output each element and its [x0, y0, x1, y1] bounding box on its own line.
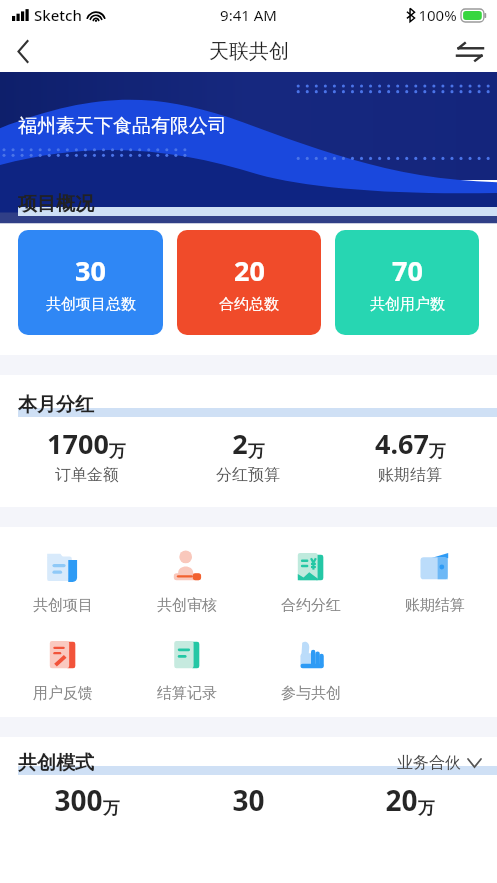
button[interactable]: 参与共创: [249, 627, 373, 709]
staticText: 万: [248, 441, 265, 462]
button[interactable]: 1700: [6, 425, 167, 485]
button[interactable]: 账期结算: [373, 539, 497, 621]
staticText: 订单金额: [55, 465, 119, 485]
button[interactable]: 合约分红: [249, 539, 373, 621]
button[interactable]: 30: [167, 781, 329, 819]
staticText: 用户反馈: [33, 684, 93, 703]
staticText: 2: [232, 425, 248, 462]
staticText: Sketch: [34, 5, 82, 25]
button[interactable]: 70: [335, 230, 479, 335]
staticText: 共创模式: [18, 751, 94, 775]
staticText: 合约总数: [219, 295, 279, 314]
staticText: 共创项目总数: [46, 295, 136, 314]
staticText: 业务合伙: [397, 753, 461, 773]
button[interactable]: 共创审核: [125, 539, 249, 621]
button[interactable]: 20: [329, 781, 491, 819]
button[interactable]: 300: [6, 781, 167, 819]
staticText: 70: [392, 252, 423, 289]
staticText: 300: [54, 781, 103, 819]
button[interactable]: 4.67: [329, 425, 491, 485]
staticText: 1700: [47, 425, 109, 462]
button[interactable]: 共创项目: [0, 539, 125, 621]
staticText: 福州素天下食品有限公司: [18, 114, 227, 138]
button[interactable]: 结算记录: [125, 627, 249, 709]
staticText: 100%: [418, 5, 457, 25]
staticText: 结算记录: [157, 684, 217, 703]
staticText: 万: [418, 798, 435, 819]
staticText: 分红预算: [216, 465, 280, 485]
staticText: 30: [75, 252, 106, 289]
staticText: 20: [234, 252, 265, 289]
staticText: 共创用户数: [370, 295, 445, 314]
button[interactable]: 用户反馈: [0, 627, 125, 709]
staticText: 共创项目: [33, 596, 93, 615]
button[interactable]: 20: [177, 230, 321, 335]
staticText: 4.67: [375, 425, 429, 462]
button[interactable]: Back: [0, 30, 46, 72]
staticText: 项目概况: [18, 192, 94, 216]
button[interactable]: 业务合伙: [397, 753, 481, 773]
button[interactable]: 2: [167, 425, 329, 485]
staticText: 30: [232, 781, 265, 819]
button[interactable]: Switch: [443, 30, 497, 72]
staticText: 9:41 AM: [220, 5, 277, 25]
staticText: 合约分红: [281, 596, 341, 615]
staticText: 万: [103, 798, 120, 819]
staticText: 20: [385, 781, 418, 819]
staticText: 天联共创: [209, 39, 289, 64]
staticText: 账期结算: [405, 596, 465, 615]
staticText: 万: [109, 441, 126, 462]
staticText: 万: [429, 441, 446, 462]
staticText: 本月分红: [18, 393, 94, 417]
staticText: 账期结算: [378, 465, 442, 485]
staticText: 共创审核: [157, 596, 217, 615]
staticText: 参与共创: [281, 684, 341, 703]
button[interactable]: 30: [18, 230, 163, 335]
